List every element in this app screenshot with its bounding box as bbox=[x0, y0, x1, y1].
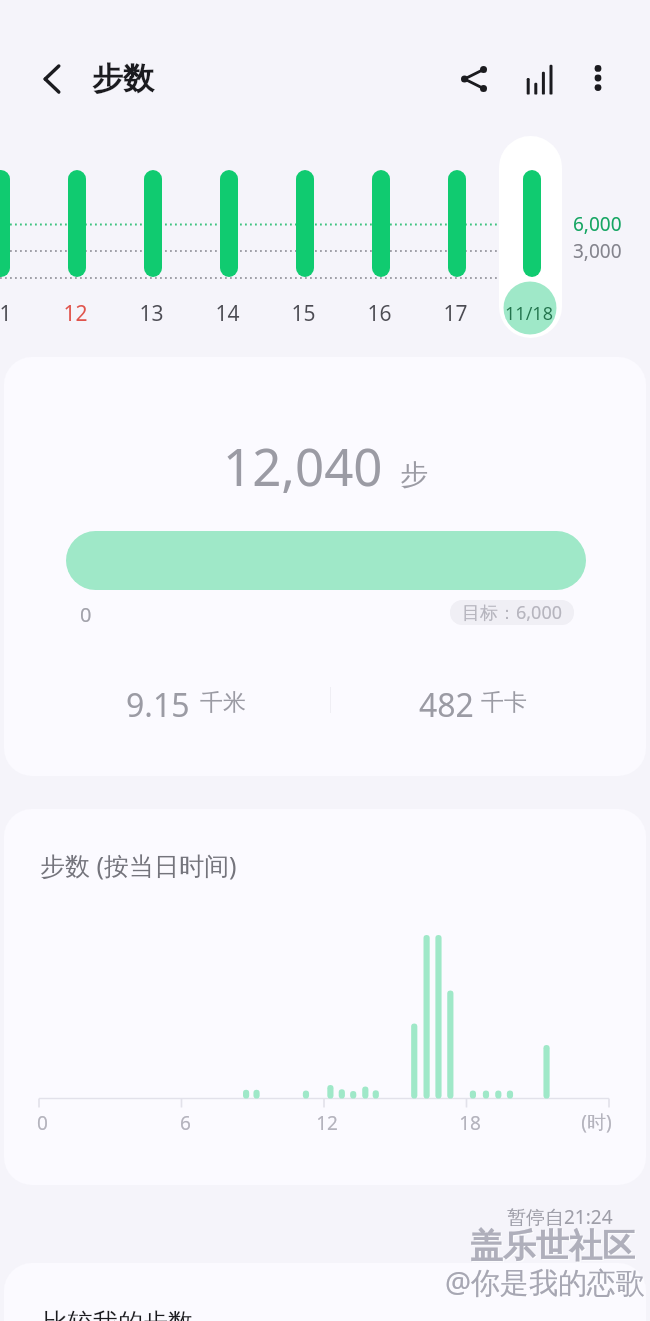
staticText: 盖乐世社区 bbox=[471, 1226, 636, 1268]
staticText: 9.15 bbox=[126, 683, 190, 727]
button[interactable]: 12,040 bbox=[4, 357, 646, 776]
staticText: @你是我的恋歌 bbox=[445, 1262, 646, 1302]
staticText: 步 bbox=[400, 457, 428, 492]
button[interactable]: Share bbox=[451, 56, 497, 102]
staticText: 千卡 bbox=[481, 688, 527, 717]
staticText: 11 bbox=[0, 299, 12, 328]
staticText: 12,040 bbox=[223, 431, 383, 500]
staticText: 盖乐世社区 bbox=[470, 1225, 635, 1267]
staticText: 11/18 bbox=[505, 301, 553, 326]
staticText: 15 bbox=[291, 299, 316, 328]
staticText: 482 bbox=[419, 683, 474, 727]
staticText: 12 bbox=[63, 299, 88, 328]
staticText: 0 bbox=[80, 601, 92, 628]
staticText: 千米 bbox=[200, 688, 246, 717]
staticText: 目标：6,000 bbox=[462, 600, 563, 625]
staticText: (时) bbox=[581, 1109, 612, 1135]
staticText: 18 bbox=[459, 1110, 481, 1136]
staticText: 步数 bbox=[92, 59, 154, 98]
staticText: 比较我的步数 bbox=[43, 1307, 193, 1321]
staticText: 0 bbox=[37, 1110, 48, 1136]
staticText: 12 bbox=[316, 1110, 338, 1136]
staticText: 暂停自21:24 bbox=[507, 1204, 613, 1230]
staticText: 17 bbox=[443, 299, 468, 328]
button[interactable]: Chart bbox=[516, 59, 562, 105]
staticText: 6 bbox=[180, 1110, 191, 1136]
staticText: 6,000 bbox=[573, 211, 622, 237]
staticText: 13 bbox=[139, 299, 164, 328]
staticText: @你是我的恋歌 bbox=[446, 1263, 647, 1303]
button[interactable]: Back bbox=[29, 56, 75, 102]
staticText: 步数 (按当日时间) bbox=[40, 848, 237, 882]
button[interactable]: 步数 (按当日时间) bbox=[4, 809, 646, 1185]
button[interactable]: 比较我的步数 bbox=[4, 1263, 646, 1321]
staticText: 16 bbox=[367, 299, 392, 328]
button[interactable]: More options bbox=[575, 55, 621, 101]
staticText: 14 bbox=[215, 299, 240, 328]
staticText: 3,000 bbox=[573, 238, 622, 264]
